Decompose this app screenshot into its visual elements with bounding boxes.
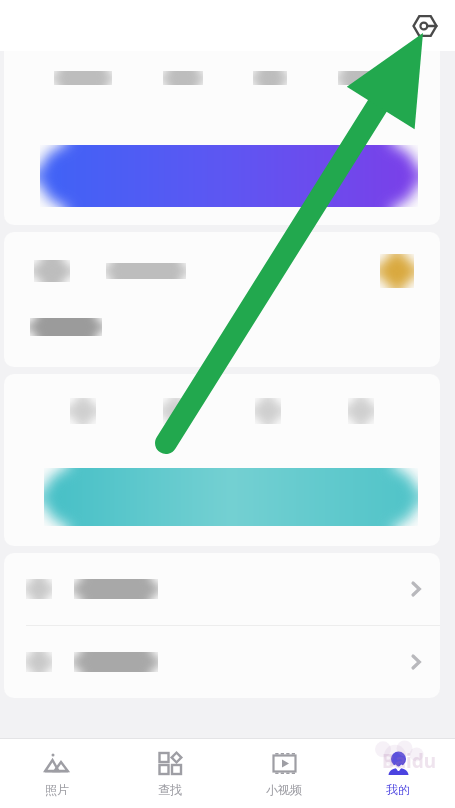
button[interactable] <box>4 232 440 367</box>
button[interactable]: 照片 <box>0 739 113 808</box>
staticText: 照片 <box>45 782 69 797</box>
button[interactable] <box>4 626 440 698</box>
button[interactable]: Settings <box>405 6 445 46</box>
button[interactable]: 查找 <box>113 739 227 808</box>
staticText: 查找 <box>158 782 182 797</box>
button[interactable]: 小视频 <box>227 739 341 808</box>
staticText: Baidu <box>382 748 437 774</box>
button[interactable] <box>40 145 418 207</box>
staticText: 小视频 <box>266 782 302 797</box>
button[interactable] <box>44 468 418 526</box>
button[interactable] <box>4 553 440 625</box>
button[interactable]: 我的 <box>341 739 455 808</box>
staticText: 我的 <box>386 782 410 797</box>
